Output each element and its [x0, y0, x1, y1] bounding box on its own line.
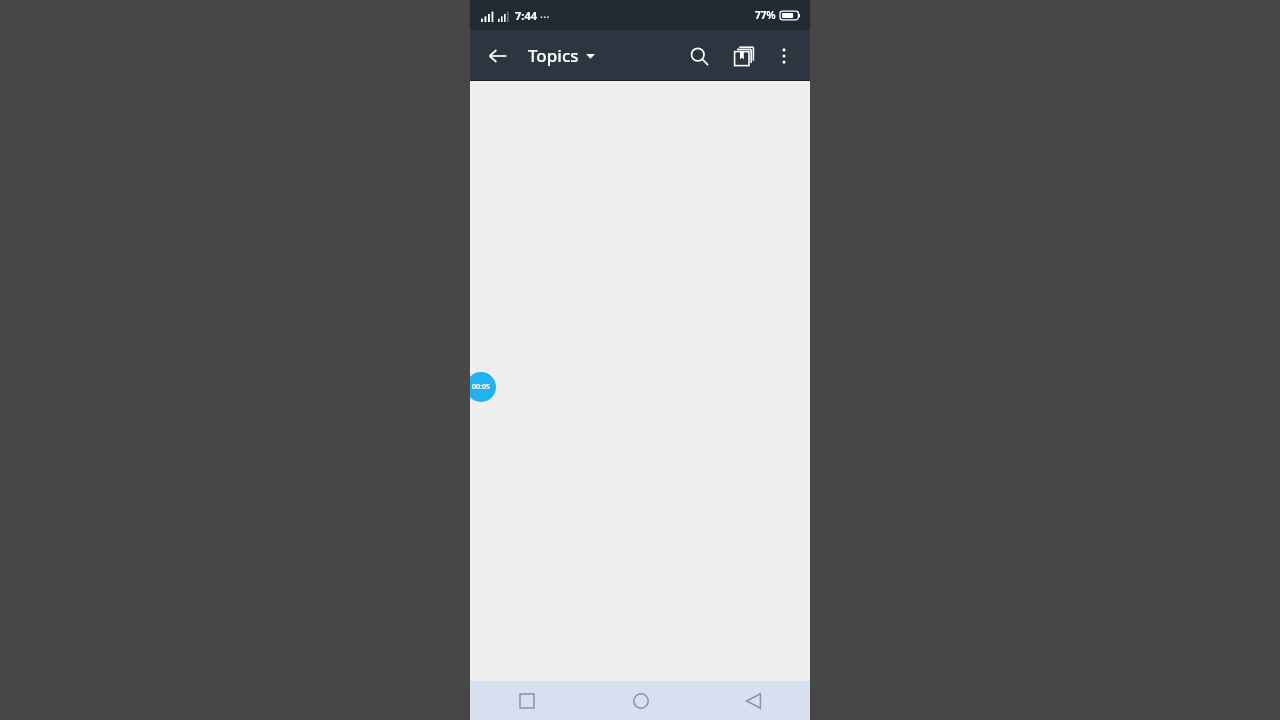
- button[interactable]: Recording timer 00:05: [470, 372, 496, 402]
- button[interactable]: Search: [679, 36, 719, 76]
- staticText: Topics: [528, 44, 579, 67]
- button[interactable]: Topics: [526, 38, 597, 73]
- staticText: 00:05: [472, 382, 490, 392]
- button[interactable]: Back: [480, 38, 516, 74]
- button[interactable]: Collections: [724, 36, 764, 76]
- staticText: 77%: [755, 8, 776, 22]
- button[interactable]: Home: [584, 681, 697, 720]
- button[interactable]: Back: [697, 681, 810, 720]
- button[interactable]: Recents: [470, 681, 584, 720]
- staticText: 7:44: [515, 8, 537, 23]
- button[interactable]: More options: [764, 36, 804, 76]
